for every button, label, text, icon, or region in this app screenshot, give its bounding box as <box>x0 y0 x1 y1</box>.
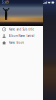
staticText: 5:49 <box>2 1 9 4</box>
staticText: Album Name (artist) <box>9 34 35 38</box>
button[interactable]: Name Book <box>0 39 43 46</box>
button[interactable]: Name and Sub-title <box>0 26 43 33</box>
button[interactable]: Album Name (artist) <box>0 33 43 39</box>
staticText: Name Book <box>9 41 24 44</box>
staticText: Name and Sub-title <box>9 28 35 31</box>
